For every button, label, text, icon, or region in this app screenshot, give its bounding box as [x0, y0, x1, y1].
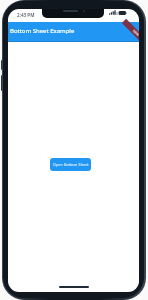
- staticText: 5G: [114, 11, 119, 16]
- staticText: 2:43 PM: [17, 12, 35, 18]
- staticText: Open Bottom Sheet: [53, 162, 89, 167]
- staticText: NEW: [132, 29, 139, 37]
- staticText: Bottom Sheet Example: [10, 27, 75, 35]
- button[interactable]: Open Bottom Sheet: [50, 158, 91, 171]
